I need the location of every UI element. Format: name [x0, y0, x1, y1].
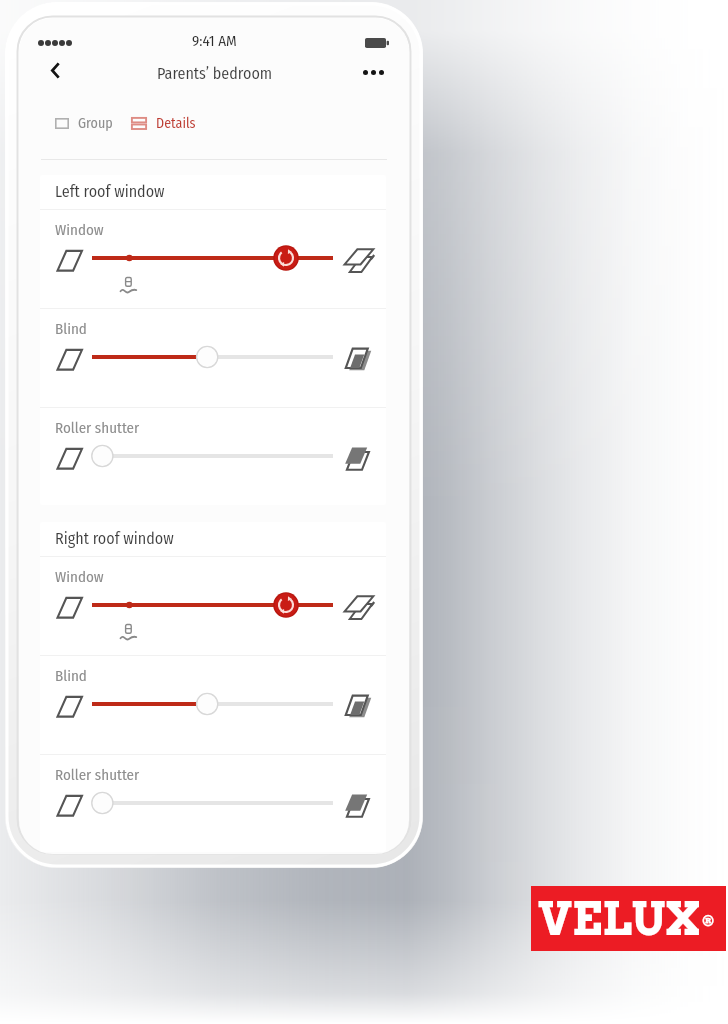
staticText: Blind	[55, 320, 87, 338]
staticText: Window	[55, 568, 104, 586]
staticText: VELUX	[538, 892, 701, 946]
button[interactable]: Window position	[85, 589, 340, 621]
staticText: Roller shutter	[55, 766, 140, 784]
button[interactable]: Roller shutter position	[85, 787, 340, 819]
staticText: Details	[156, 115, 196, 132]
staticText: Left roof window	[55, 182, 165, 201]
staticText: Right roof window	[55, 529, 174, 548]
staticText: Blind	[55, 667, 87, 685]
staticText: ®	[702, 914, 715, 930]
button[interactable]: Window position	[85, 242, 340, 274]
button[interactable]: Blind position	[85, 688, 340, 720]
staticText: Window	[55, 221, 104, 239]
staticText: Roller shutter	[55, 419, 140, 437]
button[interactable]: Details	[126, 106, 201, 141]
button[interactable]: Roller shutter position	[85, 440, 340, 472]
button[interactable]: Group	[50, 106, 118, 141]
button[interactable]: More options	[351, 55, 395, 91]
staticText: Parents’ bedroom	[157, 64, 273, 83]
staticText: 9:41 AM	[192, 32, 237, 50]
staticText: Group	[78, 115, 113, 132]
button[interactable]: Blind position	[85, 341, 340, 373]
button[interactable]: Back	[33, 53, 77, 89]
